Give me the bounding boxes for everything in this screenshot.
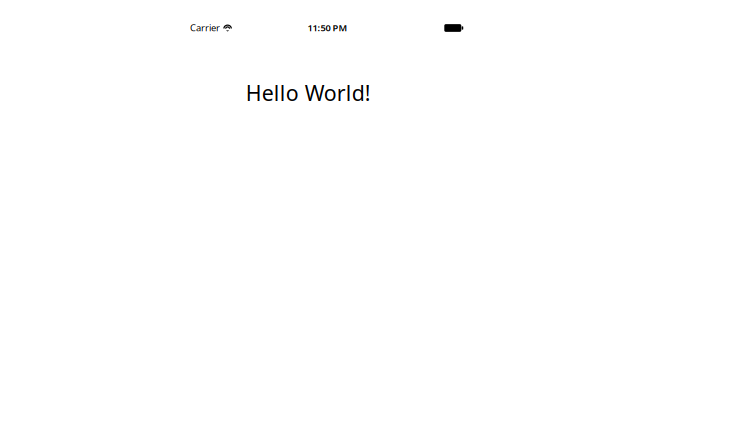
staticText: Hello World! — [246, 78, 371, 107]
staticText: 11:50 PM — [308, 21, 348, 34]
staticText: Carrier — [190, 21, 220, 34]
